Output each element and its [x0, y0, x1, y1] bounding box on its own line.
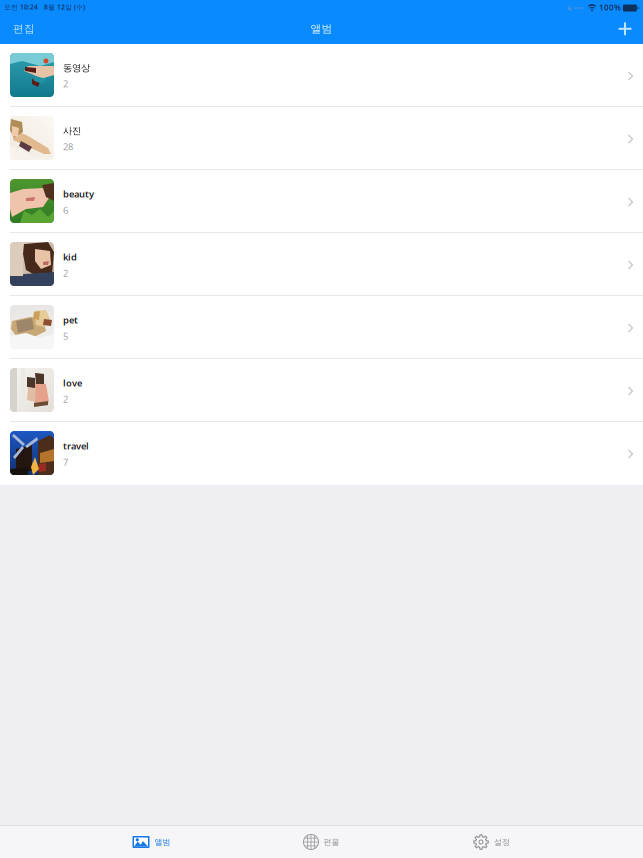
staticText: 설정: [494, 837, 510, 847]
staticText: 오전 10:24 8월 12일 (수): [4, 3, 85, 11]
staticText: 2: [63, 77, 68, 90]
button[interactable]: kid: [0, 233, 643, 296]
staticText: 2: [63, 393, 68, 405]
staticText: travel: [63, 440, 89, 452]
button[interactable]: 동영상: [0, 44, 643, 107]
staticText: 동영상: [63, 62, 90, 74]
button[interactable]: travel: [0, 422, 643, 485]
staticText: 7: [63, 456, 68, 468]
button[interactable]: pet: [0, 296, 643, 359]
staticText: kid: [63, 251, 77, 263]
staticText: 100%: [599, 2, 621, 13]
staticText: 2: [63, 267, 68, 279]
staticText: 편물: [323, 837, 339, 847]
staticText: love: [63, 377, 82, 389]
button[interactable]: 설정: [406, 826, 576, 858]
button[interactable]: 편집: [5, 15, 43, 43]
button[interactable]: love: [0, 359, 643, 422]
staticText: 6: [63, 204, 68, 216]
staticText: 5: [63, 330, 68, 342]
button[interactable]: beauty: [0, 170, 643, 233]
staticText: beauty: [63, 188, 94, 200]
staticText: 앨범: [310, 22, 332, 35]
staticText: pet: [63, 314, 78, 326]
staticText: 사진: [63, 125, 81, 137]
staticText: 28: [63, 140, 73, 153]
staticText: 앨범: [154, 837, 170, 847]
button[interactable]: 사진: [0, 107, 643, 170]
button[interactable]: 앨범: [66, 826, 236, 858]
staticText: 편집: [13, 22, 35, 35]
button[interactable]: Add album: [612, 16, 638, 42]
button[interactable]: 편물: [236, 826, 406, 858]
